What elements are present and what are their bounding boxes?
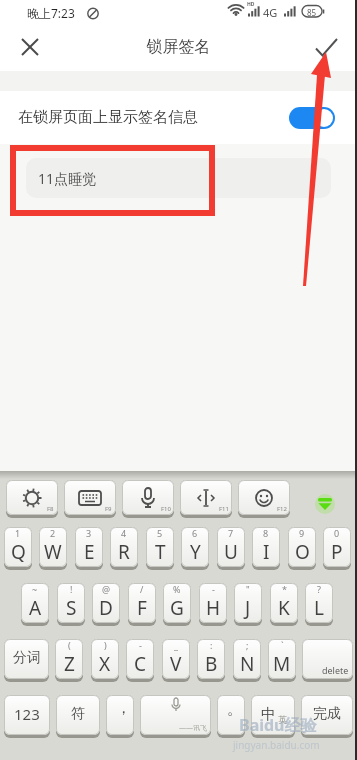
staticText: ) [104, 639, 107, 651]
staticText: 6 [192, 527, 198, 539]
button[interactable]: ; [233, 639, 261, 682]
staticText: delete [322, 664, 349, 676]
button[interactable]: 8 [252, 527, 280, 570]
staticText: D [99, 595, 113, 621]
staticText: Q [11, 539, 26, 565]
button[interactable]: 7 [217, 527, 245, 570]
button[interactable] [315, 494, 335, 514]
button[interactable]: delete [302, 639, 353, 682]
staticText: S [66, 595, 77, 621]
button[interactable]: 2 [39, 527, 67, 570]
staticText: 在锁屏页面上显示签名信息 [18, 108, 198, 127]
staticText: F9 [105, 505, 112, 513]
staticText: 1 [15, 527, 21, 539]
button[interactable]: ` [268, 639, 296, 682]
button[interactable]: 在锁屏页面上显示签名信息 [0, 91, 357, 144]
button[interactable]: ~ [21, 583, 49, 626]
staticText: ( [68, 639, 71, 651]
staticText: ; [246, 639, 249, 651]
button[interactable]: 4 [110, 527, 138, 570]
staticText: % [173, 583, 181, 595]
staticText: Y [190, 539, 201, 565]
staticText: W [44, 539, 62, 565]
button[interactable]: 5 [146, 527, 174, 570]
staticText: U [224, 539, 238, 565]
staticText: 123 [14, 704, 40, 724]
button[interactable] [308, 32, 344, 62]
staticText: 符 [71, 705, 85, 723]
staticText: O [295, 539, 310, 565]
staticText: ， [116, 699, 131, 718]
button[interactable]: * [270, 583, 298, 626]
button[interactable]: 。 [217, 695, 245, 738]
staticText: ~ [32, 583, 38, 595]
button[interactable]: F10 [122, 480, 174, 518]
button[interactable]: : [197, 639, 225, 682]
button[interactable]: 3 [75, 527, 103, 570]
button[interactable]: 0 [323, 527, 351, 570]
staticText: 。 [227, 700, 242, 719]
staticText: - [139, 639, 142, 651]
staticText: 9 [299, 527, 305, 539]
staticText: V [170, 651, 182, 677]
button[interactable]: ——讯飞 [140, 695, 211, 738]
staticText: F8 [47, 505, 54, 513]
staticText: K [278, 595, 290, 621]
staticText: * [282, 583, 287, 595]
staticText: 11点睡觉 [38, 169, 97, 188]
staticText: C [134, 651, 147, 677]
button[interactable]: - [126, 639, 154, 682]
staticText: G [170, 595, 184, 621]
staticText: F11 [219, 505, 229, 513]
button[interactable]: F9 [64, 480, 116, 518]
staticText: : [210, 639, 213, 651]
staticText: B [205, 651, 218, 677]
staticText: T [155, 539, 166, 565]
staticText: ? [317, 583, 321, 595]
staticText: L [314, 595, 324, 621]
staticText: 英 [278, 714, 287, 725]
button[interactable]: ! [57, 583, 85, 626]
button[interactable]: / [128, 583, 156, 626]
button[interactable]: ( [55, 639, 83, 682]
button[interactable]: 符 [56, 695, 100, 738]
button[interactable]: " [234, 583, 262, 626]
staticText: 85 [307, 7, 317, 18]
staticText: @ [102, 583, 111, 595]
button[interactable]: F12 [238, 480, 290, 518]
button[interactable]: @ [92, 583, 120, 626]
button[interactable]: - [199, 583, 227, 626]
staticText: 7 [228, 527, 234, 539]
staticText: 中 [261, 705, 276, 724]
staticText: 3 [86, 527, 92, 539]
staticText: M [273, 651, 291, 677]
button[interactable]: _ [162, 639, 190, 682]
button[interactable]: 11点睡觉 [26, 158, 331, 198]
staticText: HD [247, 1, 255, 8]
button[interactable]: 分词 [4, 639, 49, 682]
button[interactable]: ? [305, 583, 333, 626]
button[interactable]: 中 [251, 695, 295, 738]
button[interactable]: 123 [4, 695, 50, 738]
button[interactable]: 完成 [301, 695, 353, 738]
button[interactable]: ， [106, 695, 134, 738]
button[interactable]: 1 [4, 527, 32, 570]
button[interactable]: F8 [6, 480, 58, 518]
staticText: jingyan.baidu.com [233, 738, 320, 752]
button[interactable] [14, 33, 46, 61]
staticText: ` [281, 639, 284, 651]
staticText: 4G [263, 5, 278, 20]
staticText: Z [64, 651, 75, 677]
staticText: 4 [121, 527, 127, 539]
button[interactable]: F11 [180, 480, 232, 518]
staticText: ! [70, 583, 73, 595]
staticText: Baidu经验 [239, 714, 317, 736]
button[interactable]: 9 [288, 527, 316, 570]
button[interactable]: 6 [181, 527, 209, 570]
staticText: F [137, 595, 147, 621]
button[interactable]: % [163, 583, 191, 626]
button[interactable]: ) [91, 639, 119, 682]
staticText: 分词 [13, 649, 41, 667]
button[interactable] [289, 107, 335, 129]
staticText: F10 [161, 505, 171, 513]
